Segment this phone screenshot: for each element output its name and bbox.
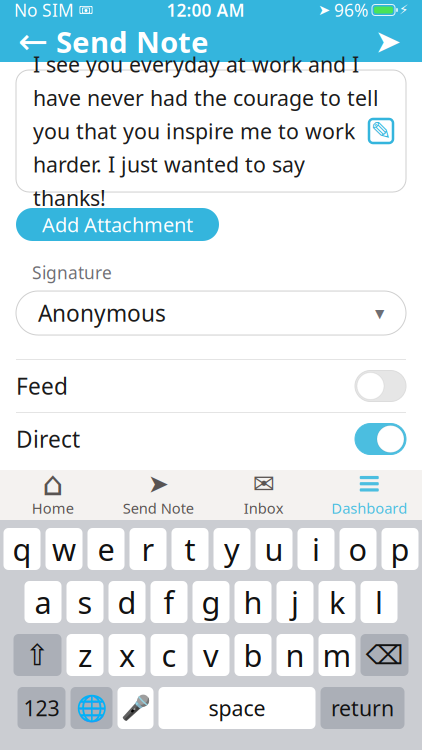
staticText: Send Note xyxy=(123,498,194,518)
staticText: s xyxy=(77,582,92,622)
button[interactable]: a xyxy=(24,581,61,623)
staticText: ▾ xyxy=(375,302,384,324)
button[interactable]: Dashboard xyxy=(316,470,422,520)
button[interactable]: e xyxy=(87,528,124,570)
button[interactable]: v xyxy=(192,634,229,676)
staticText: b xyxy=(243,635,262,675)
staticText: x xyxy=(119,635,135,675)
button[interactable]: y xyxy=(213,528,250,570)
button[interactable]: k xyxy=(318,581,355,623)
staticText: ⌂ xyxy=(42,465,63,503)
button[interactable]: n xyxy=(276,634,313,676)
staticText: Dashboard xyxy=(331,498,407,518)
button[interactable]: q xyxy=(3,528,40,570)
staticText: return xyxy=(331,694,394,722)
button[interactable]: Direct xyxy=(0,413,422,465)
staticText: j xyxy=(291,582,299,622)
staticText: v xyxy=(203,635,219,675)
staticText: I see you everyday at work and I have ne… xyxy=(33,50,379,212)
staticText: ← xyxy=(18,21,48,62)
staticText: Feed xyxy=(16,371,68,401)
staticText: y xyxy=(224,529,240,569)
button[interactable]: 123 xyxy=(17,687,65,729)
button[interactable]: i xyxy=(297,528,334,570)
button[interactable]: g xyxy=(192,581,229,623)
staticText: Anonymous xyxy=(38,298,166,328)
staticText: ➤ xyxy=(318,2,330,18)
button[interactable]: p xyxy=(381,528,418,570)
staticText: p xyxy=(390,529,409,569)
button[interactable]: c xyxy=(150,634,187,676)
button[interactable]: ➤ xyxy=(105,470,211,520)
button[interactable]: b xyxy=(234,634,271,676)
staticText: n xyxy=(285,635,304,675)
button[interactable]: d xyxy=(108,581,145,623)
staticText: 🌐 xyxy=(75,693,107,722)
staticText: Signature xyxy=(32,261,112,284)
staticText: c xyxy=(161,635,176,675)
staticText: e xyxy=(97,529,114,569)
staticText: u xyxy=(264,529,283,569)
staticText: m xyxy=(322,635,351,675)
button[interactable]: Delete xyxy=(360,634,408,676)
staticText: h xyxy=(243,582,262,622)
staticText: Add Attachment xyxy=(42,211,193,238)
staticText: ➤ xyxy=(148,469,169,498)
button[interactable]: Dictate xyxy=(117,687,153,729)
button[interactable]: space xyxy=(158,687,315,729)
staticText: space xyxy=(208,694,265,722)
button[interactable]: z xyxy=(66,634,103,676)
staticText: g xyxy=(201,582,220,622)
button[interactable]: return xyxy=(320,687,404,729)
button[interactable]: t xyxy=(171,528,208,570)
staticText: Home xyxy=(32,498,74,518)
button[interactable]: Feed xyxy=(0,360,422,412)
staticText: t xyxy=(184,529,195,569)
staticText: o xyxy=(348,529,367,569)
button[interactable]: Next keyboard xyxy=(70,687,112,729)
staticText: No SIM xyxy=(14,0,74,21)
button[interactable]: ✉ xyxy=(211,470,316,520)
staticText: z xyxy=(78,635,92,675)
staticText: ✉ xyxy=(253,469,275,499)
button[interactable]: ⌂ xyxy=(0,470,105,520)
staticText: Direct xyxy=(16,424,80,454)
staticText: ⚡︎ xyxy=(399,2,408,17)
staticText: d xyxy=(117,582,136,622)
button[interactable]: u xyxy=(255,528,292,570)
staticText: l xyxy=(375,582,383,622)
button[interactable]: Anonymous xyxy=(16,291,406,335)
staticText: w xyxy=(52,529,76,569)
staticText: ⇧ xyxy=(25,638,50,672)
button[interactable]: Shift xyxy=(13,634,61,676)
staticText: q xyxy=(12,529,31,569)
button[interactable]: j xyxy=(276,581,313,623)
staticText: 12:00 AM xyxy=(166,0,244,21)
button[interactable]: Back xyxy=(10,21,56,62)
button[interactable]: o xyxy=(339,528,376,570)
staticText: Send Note xyxy=(56,22,209,61)
button[interactable]: s xyxy=(66,581,103,623)
staticText: k xyxy=(329,582,345,622)
staticText: ✎ xyxy=(370,117,391,145)
button[interactable]: w xyxy=(45,528,82,570)
staticText: 96% xyxy=(334,0,368,21)
staticText: i xyxy=(312,529,320,569)
staticText: Inbox xyxy=(244,498,284,518)
staticText: a xyxy=(34,582,51,622)
button[interactable]: x xyxy=(108,634,145,676)
button[interactable]: Send xyxy=(364,21,412,62)
staticText: r xyxy=(141,529,154,569)
button[interactable]: m xyxy=(318,634,355,676)
button[interactable]: h xyxy=(234,581,271,623)
button[interactable]: r xyxy=(129,528,166,570)
button[interactable]: l xyxy=(360,581,397,623)
button[interactable]: f xyxy=(150,581,187,623)
staticText: ➤ xyxy=(374,23,401,60)
staticText: ⌫ xyxy=(365,640,403,670)
staticText: 🎤 xyxy=(120,694,150,722)
staticText: f xyxy=(163,582,174,622)
button[interactable]: Add Attachment xyxy=(16,208,219,241)
staticText: 123 xyxy=(23,694,59,722)
